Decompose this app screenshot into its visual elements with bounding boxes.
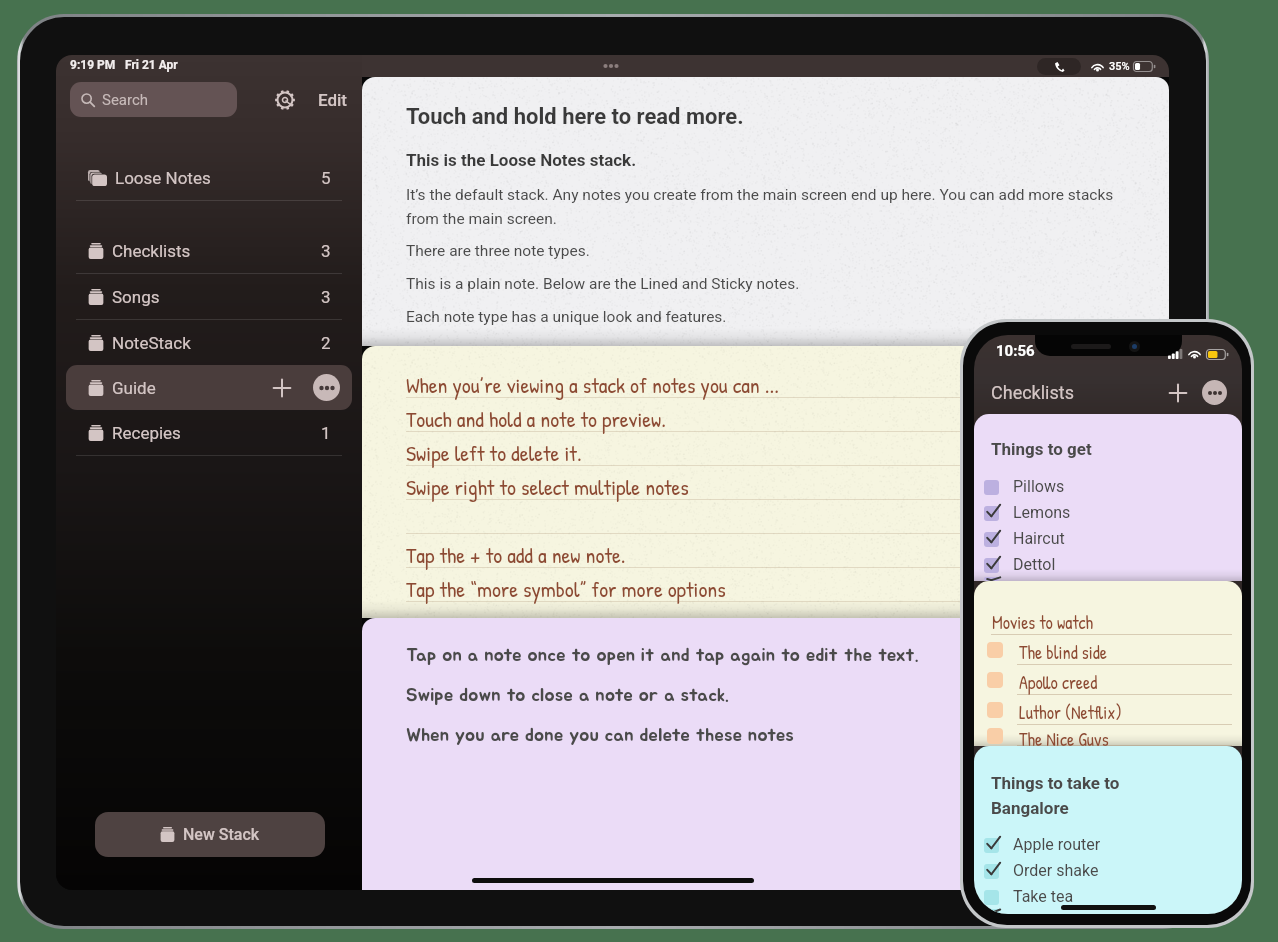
button[interactable]: More options bbox=[313, 374, 340, 401]
button[interactable] bbox=[984, 577, 1242, 581]
staticText: When you’re viewing a stack of notes you… bbox=[406, 370, 779, 400]
button[interactable] bbox=[984, 909, 1230, 914]
button[interactable]: NoteStack bbox=[56, 320, 362, 365]
staticText: 35% bbox=[1109, 60, 1130, 73]
staticText: Each note type has a unique look and fea… bbox=[406, 308, 727, 326]
staticText: New Stack bbox=[183, 825, 260, 844]
staticText: Haircut bbox=[1013, 529, 1065, 548]
staticText: 9:19 PM bbox=[70, 58, 116, 72]
staticText: This is the Loose Notes stack. bbox=[406, 150, 637, 170]
staticText: This is a plain note. Below are the Line… bbox=[406, 275, 800, 293]
staticText: It’s the default stack. Any notes you cr… bbox=[406, 186, 1130, 227]
button[interactable]: Haircut bbox=[984, 525, 1242, 551]
button[interactable]: Recepies bbox=[56, 410, 362, 455]
staticText: When you are done you can delete these n… bbox=[406, 726, 794, 745]
button[interactable]: Settings bbox=[270, 85, 300, 115]
button[interactable]: Checklists bbox=[56, 228, 362, 273]
button[interactable]: Pillows bbox=[984, 473, 1242, 499]
staticText: Apple router bbox=[1013, 835, 1101, 854]
staticText: 2 bbox=[321, 333, 331, 353]
staticText: The blind side bbox=[1019, 640, 1107, 664]
staticText: Edit bbox=[318, 90, 348, 110]
staticText: 3 bbox=[321, 241, 331, 261]
staticText: Checklists bbox=[991, 382, 1074, 403]
staticText: Pillows bbox=[1013, 477, 1065, 496]
staticText: Swipe left to delete it. bbox=[406, 438, 582, 468]
staticText: Swipe right to select multiple notes bbox=[406, 472, 689, 502]
button[interactable]: More options bbox=[1202, 380, 1227, 405]
button[interactable]: Add checklist bbox=[1164, 379, 1192, 407]
staticText: Tap the “more symbol” for more options bbox=[406, 574, 726, 604]
button[interactable]: Songs bbox=[56, 274, 362, 319]
staticText: Touch and hold a note to preview. bbox=[406, 404, 666, 434]
staticText: Loose Notes bbox=[115, 168, 211, 188]
staticText: Tap on a note once to open it and tap ag… bbox=[406, 646, 919, 665]
button[interactable]: Apollo creed bbox=[987, 665, 1232, 695]
staticText: Lemons bbox=[1013, 503, 1071, 522]
button[interactable]: Search bbox=[70, 82, 237, 117]
button[interactable]: Take tea bbox=[984, 883, 1230, 909]
staticText: 1 bbox=[321, 423, 331, 443]
button[interactable]: Add note bbox=[269, 375, 295, 401]
staticText: Things to get bbox=[991, 439, 1092, 459]
staticText: Luthor (Netflix) bbox=[1019, 700, 1122, 724]
button[interactable]: Guide bbox=[66, 365, 352, 410]
button[interactable]: The Nice Guys bbox=[987, 725, 1232, 746]
staticText: Movies to watch bbox=[992, 610, 1094, 634]
staticText: The Nice Guys bbox=[1019, 727, 1109, 746]
button[interactable]: Order shake bbox=[984, 857, 1230, 883]
button[interactable]: Edit bbox=[318, 90, 348, 110]
button[interactable]: The blind side bbox=[987, 635, 1232, 665]
staticText: Tap the + to add a new note. bbox=[406, 540, 626, 570]
staticText: Things to take to bbox=[991, 773, 1120, 793]
button[interactable]: Lemons bbox=[984, 499, 1242, 525]
staticText: Bangalore bbox=[991, 798, 1069, 818]
staticText: There are three note types. bbox=[406, 242, 590, 260]
staticText: Apollo creed bbox=[1019, 670, 1098, 694]
staticText: Checklists bbox=[112, 241, 191, 261]
staticText: Guide bbox=[112, 378, 156, 398]
button[interactable]: Loose Notes bbox=[56, 155, 362, 200]
button[interactable]: Movies to watch bbox=[987, 605, 1232, 635]
button[interactable]: Apple router bbox=[984, 831, 1230, 857]
staticText: Touch and hold here to read more. bbox=[406, 104, 744, 130]
staticText: Recepies bbox=[112, 423, 181, 443]
staticText: Order shake bbox=[1013, 861, 1099, 880]
staticText: Songs bbox=[112, 287, 160, 307]
staticText: Fri 21 Apr bbox=[125, 58, 178, 72]
staticText: NoteStack bbox=[112, 333, 191, 353]
button[interactable]: New Stack bbox=[95, 812, 325, 857]
staticText: Search bbox=[102, 91, 149, 109]
staticText: 10:56 bbox=[996, 342, 1035, 360]
staticText: Dettol bbox=[1013, 555, 1056, 574]
button[interactable]: Luthor (Netflix) bbox=[987, 695, 1232, 725]
button[interactable]: Dettol bbox=[984, 551, 1242, 577]
staticText: 3 bbox=[321, 287, 331, 307]
staticText: Take tea bbox=[1013, 887, 1074, 906]
staticText: 5 bbox=[321, 168, 331, 188]
staticText: Swipe down to close a note or a stack. bbox=[406, 686, 729, 705]
